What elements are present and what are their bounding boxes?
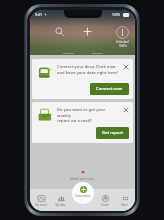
staticText: Connect now	[96, 86, 123, 92]
button[interactable]: More	[115, 189, 134, 211]
button[interactable]: Connect now	[90, 83, 129, 95]
button[interactable]: Estimated HbA1c	[116, 26, 129, 48]
staticText: My data	[55, 203, 66, 207]
button[interactable]: Dismiss	[122, 63, 129, 70]
staticText: Estimated	[116, 40, 129, 44]
button[interactable]: Coach	[95, 189, 114, 211]
button[interactable]: Connections	[72, 182, 94, 204]
staticText: My trend	[35, 203, 47, 207]
staticText: report via e-mail?	[57, 118, 92, 124]
button[interactable]: Add	[80, 24, 94, 38]
button[interactable]: Connect your Accu-Chek now	[32, 59, 133, 99]
staticText: Made with love	[70, 176, 95, 181]
button[interactable]: Get report	[96, 127, 129, 139]
staticText: HbA1c	[119, 44, 127, 48]
staticText: Do you want to get your weekly	[57, 107, 120, 118]
staticText: Connections	[75, 194, 91, 198]
staticText: More	[121, 203, 128, 207]
button[interactable]: Dismiss	[122, 106, 129, 113]
button[interactable]: Search	[52, 24, 66, 38]
staticText: Connect your Accu-Chek now	[57, 64, 116, 70]
staticText: Coach	[101, 203, 109, 207]
button[interactable]: Do you want to get your weekly	[32, 102, 133, 143]
staticText: Get report	[102, 130, 123, 136]
button[interactable]: My trend	[31, 189, 50, 211]
staticText: and have your data right here!	[57, 70, 118, 76]
staticText: 9:41	[35, 12, 42, 17]
button[interactable]: My data	[51, 189, 70, 211]
staticText: 100%	[112, 13, 121, 17]
